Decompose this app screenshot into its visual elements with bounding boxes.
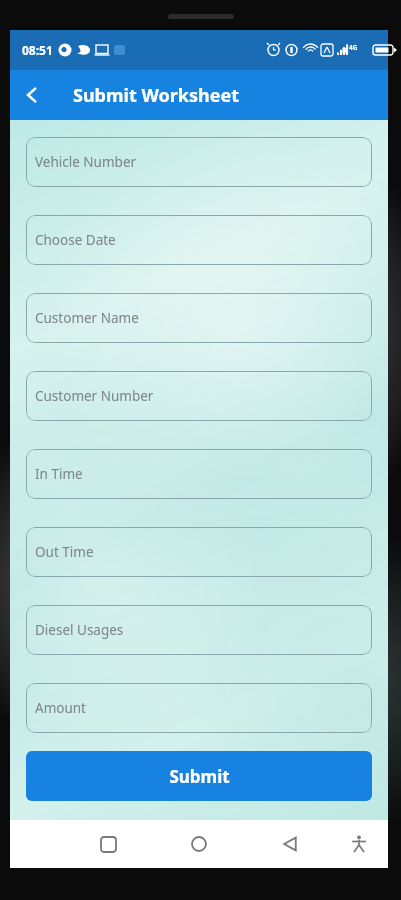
button[interactable]: Back	[268, 822, 312, 866]
button[interactable]: Out Time	[26, 527, 372, 577]
button[interactable]: Back	[10, 73, 54, 117]
button[interactable]: Home	[177, 822, 221, 866]
staticText: Submit Worksheet	[73, 83, 239, 108]
button[interactable]: Customer Name	[26, 293, 372, 343]
staticText: 08:51	[22, 42, 53, 58]
staticText: Diesel Usages	[35, 621, 124, 639]
button[interactable]: Amount	[26, 683, 372, 733]
button[interactable]: Diesel Usages	[26, 605, 372, 655]
staticText: Vehicle Number	[35, 153, 137, 171]
button[interactable]: Choose Date	[26, 215, 372, 265]
button[interactable]: Submit	[26, 751, 372, 801]
button[interactable]: Vehicle Number	[26, 137, 372, 187]
staticText: Choose Date	[35, 231, 116, 249]
button[interactable]: Customer Number	[26, 371, 372, 421]
staticText: R	[342, 44, 348, 56]
staticText: 4G	[349, 43, 358, 52]
button[interactable]: In Time	[26, 449, 372, 499]
staticText: Customer Name	[35, 309, 139, 327]
button[interactable]: Recent apps	[86, 822, 130, 866]
button[interactable]: Accessibility	[337, 822, 381, 866]
staticText: Submit	[169, 765, 230, 788]
staticText: Customer Number	[35, 387, 154, 405]
staticText: Amount	[35, 699, 86, 717]
staticText: In Time	[35, 465, 83, 483]
staticText: Out Time	[35, 543, 94, 561]
